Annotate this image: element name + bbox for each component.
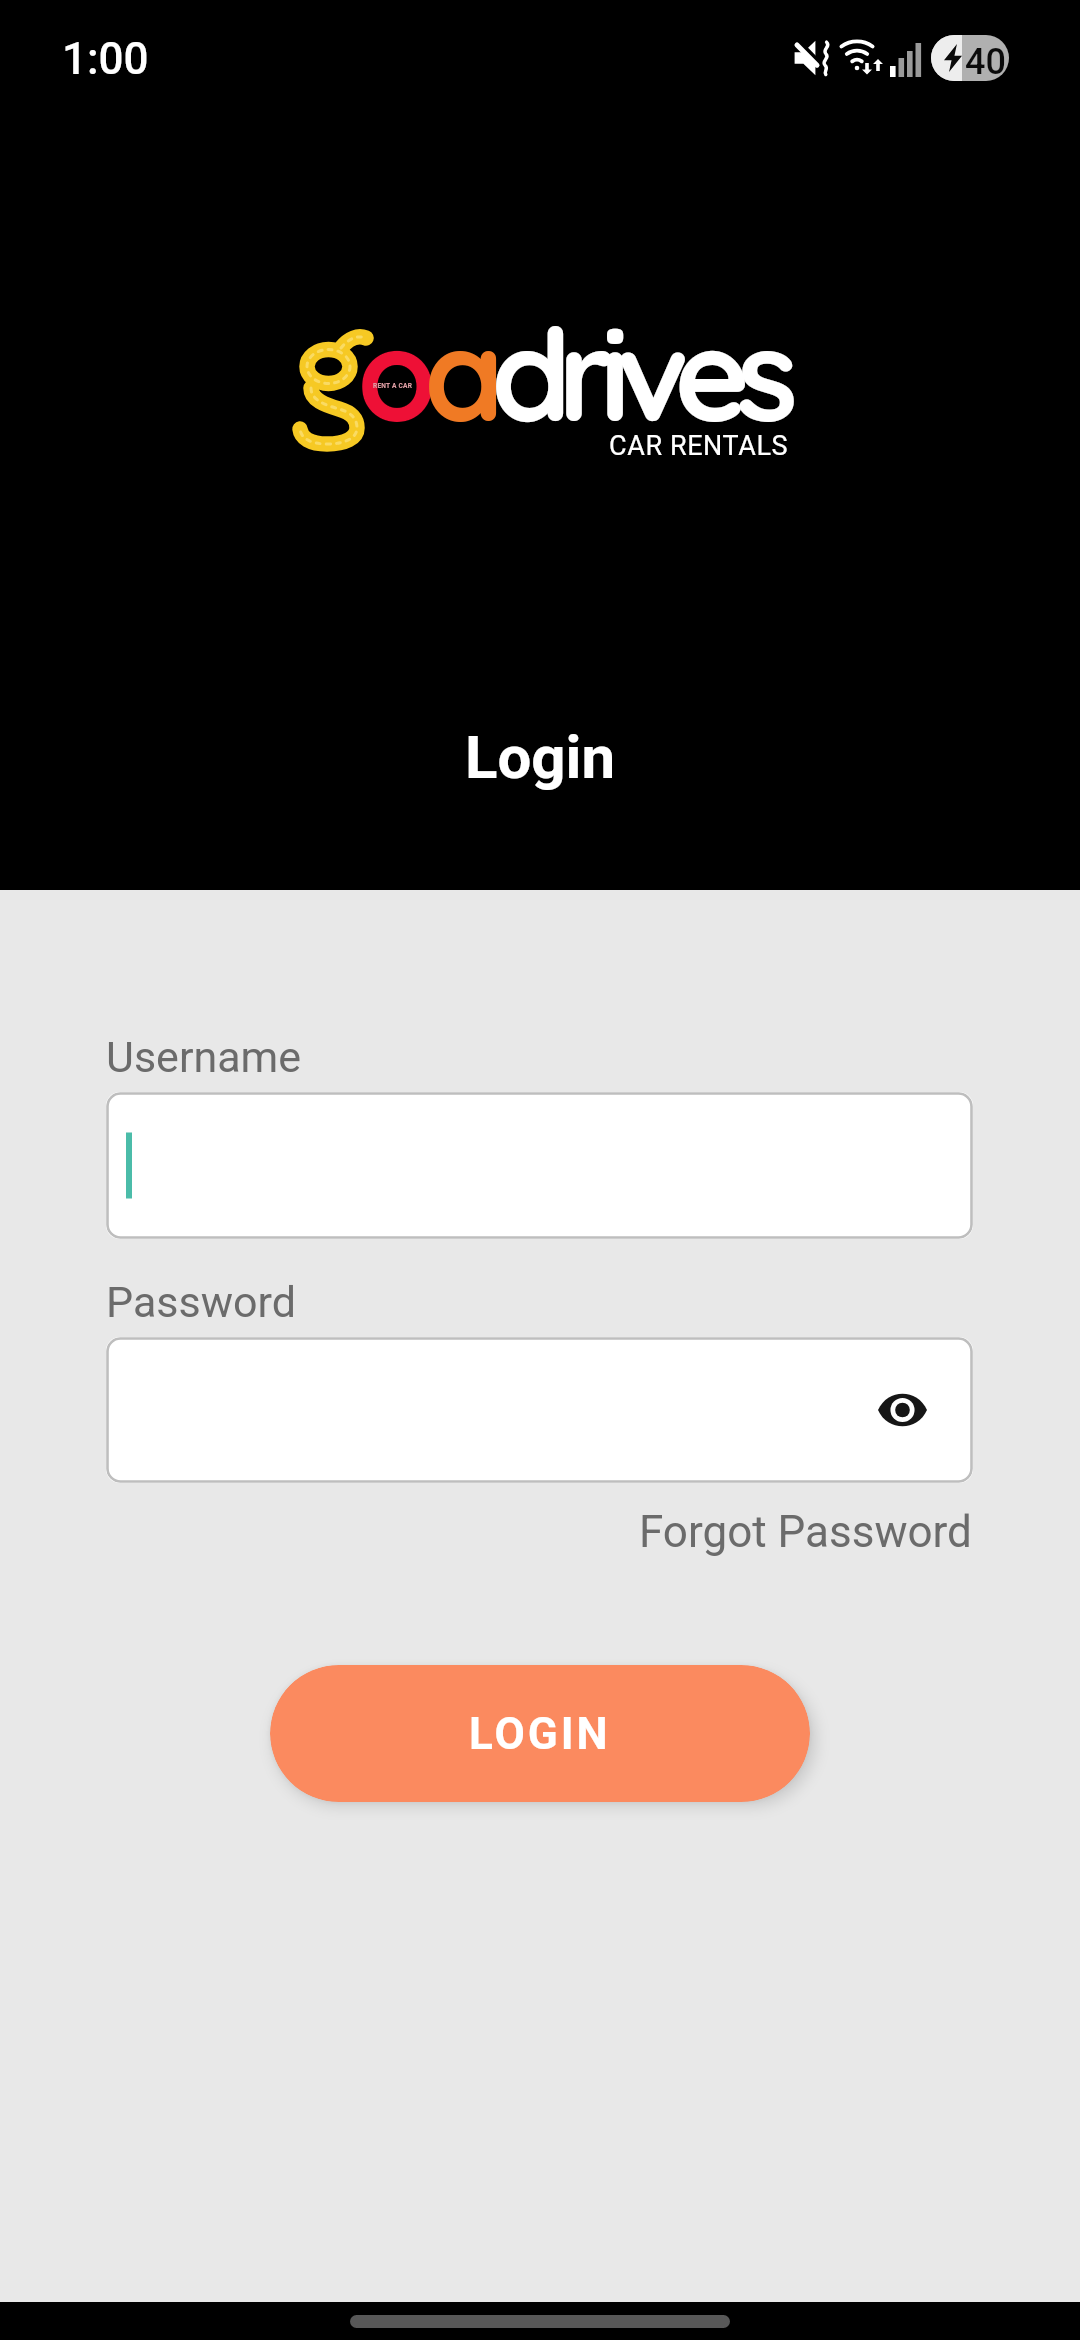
staticText: g <box>288 293 357 453</box>
staticText: RENT A CAR <box>373 382 413 390</box>
staticText: CAR RENTALS <box>609 430 789 462</box>
staticText: Username <box>106 1032 302 1082</box>
button[interactable]: Forgot Password <box>639 1506 972 1558</box>
staticText: drives <box>491 293 785 453</box>
staticText: Login <box>465 722 616 792</box>
button[interactable] <box>106 1092 973 1239</box>
staticText: Password <box>106 1277 296 1327</box>
button[interactable]: Show password <box>862 1370 942 1450</box>
button[interactable]: Show password <box>106 1337 973 1483</box>
staticText: o <box>357 293 424 453</box>
button[interactable]: LOGIN <box>270 1665 810 1802</box>
staticText: a <box>424 293 491 453</box>
staticText: 1:00 <box>62 33 149 85</box>
staticText: 40 <box>965 41 1006 81</box>
staticText: LOGIN <box>469 1708 611 1760</box>
